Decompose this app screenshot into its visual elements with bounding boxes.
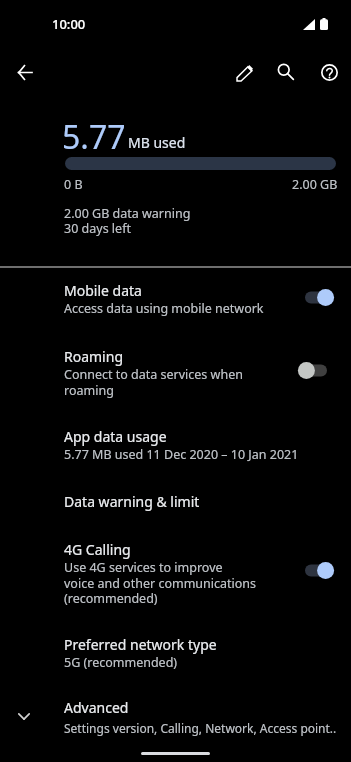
staticText: 30 days left xyxy=(64,220,131,237)
staticText: Advanced xyxy=(64,698,129,717)
button[interactable]: 4G Calling xyxy=(0,535,351,630)
staticText: 0 B xyxy=(64,176,83,193)
staticText: 2.00 GB data warning xyxy=(64,205,191,222)
button[interactable]: App data usage xyxy=(0,422,351,487)
staticText: Preferred network type xyxy=(64,635,217,654)
staticText: Connect to data services when roaming xyxy=(64,366,243,398)
button[interactable]: Roaming xyxy=(0,342,351,422)
staticText: 2.00 GB xyxy=(292,176,338,193)
staticText: 4G Calling xyxy=(64,540,131,559)
staticText: 10:00 xyxy=(52,15,86,33)
staticText: Access data using mobile network xyxy=(64,300,264,317)
other: Expand advanced settings xyxy=(6,698,42,734)
button[interactable]: Help xyxy=(309,52,349,92)
button[interactable]: Preferred network type xyxy=(0,630,351,693)
staticText: Roaming xyxy=(64,347,123,366)
staticText: 5.77 xyxy=(62,115,126,159)
staticText: 5.77 MB used 11 Dec 2020 – 10 Jan 2021 xyxy=(64,446,299,463)
staticText: MB used xyxy=(128,133,186,152)
staticText: 5G (recommended) xyxy=(64,654,178,671)
staticText: Settings version, Calling, Network, Acce… xyxy=(64,720,337,736)
staticText: Mobile data xyxy=(64,281,142,300)
button[interactable]: Data warning & limit xyxy=(0,487,351,535)
staticText: Data warning & limit xyxy=(64,492,200,511)
staticText: App data usage xyxy=(64,427,167,446)
button[interactable]: Edit xyxy=(224,52,264,92)
staticText: Use 4G services to improve voice and oth… xyxy=(64,559,257,606)
button[interactable]: Search xyxy=(266,52,306,92)
button[interactable]: Back xyxy=(5,52,45,92)
button[interactable]: Mobile data xyxy=(0,276,351,342)
button[interactable]: Expand advanced settings xyxy=(0,693,351,762)
